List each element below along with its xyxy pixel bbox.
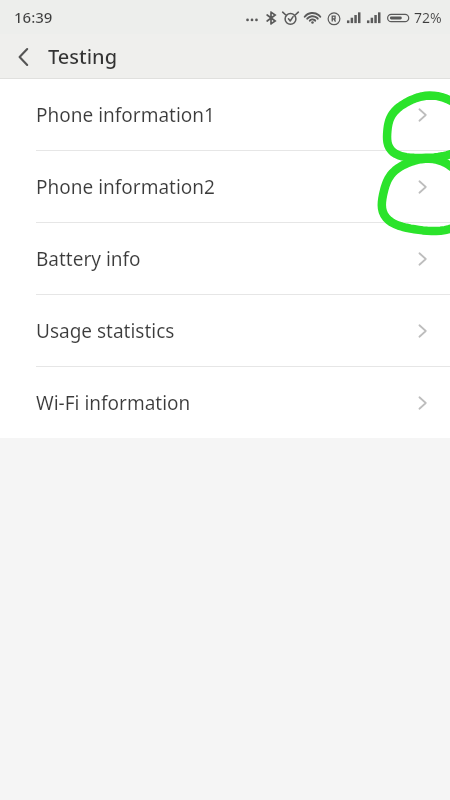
staticText: Usage statistics	[36, 318, 175, 344]
staticText: 72%	[414, 8, 442, 27]
button[interactable]: Wi-Fi information	[0, 367, 450, 438]
button[interactable]: Usage statistics	[0, 295, 450, 366]
staticText: Testing	[48, 43, 118, 70]
button[interactable]: Phone information1	[0, 79, 450, 150]
button[interactable]: Battery info	[0, 223, 450, 294]
staticText: Phone information1	[36, 102, 215, 128]
staticText: Battery info	[36, 246, 141, 272]
staticText: 16:39	[14, 7, 53, 27]
staticText: Phone information2	[36, 174, 215, 200]
button[interactable]: Phone information2	[0, 151, 450, 222]
staticText: Wi-Fi information	[36, 390, 191, 416]
button[interactable]: Back	[0, 34, 48, 79]
